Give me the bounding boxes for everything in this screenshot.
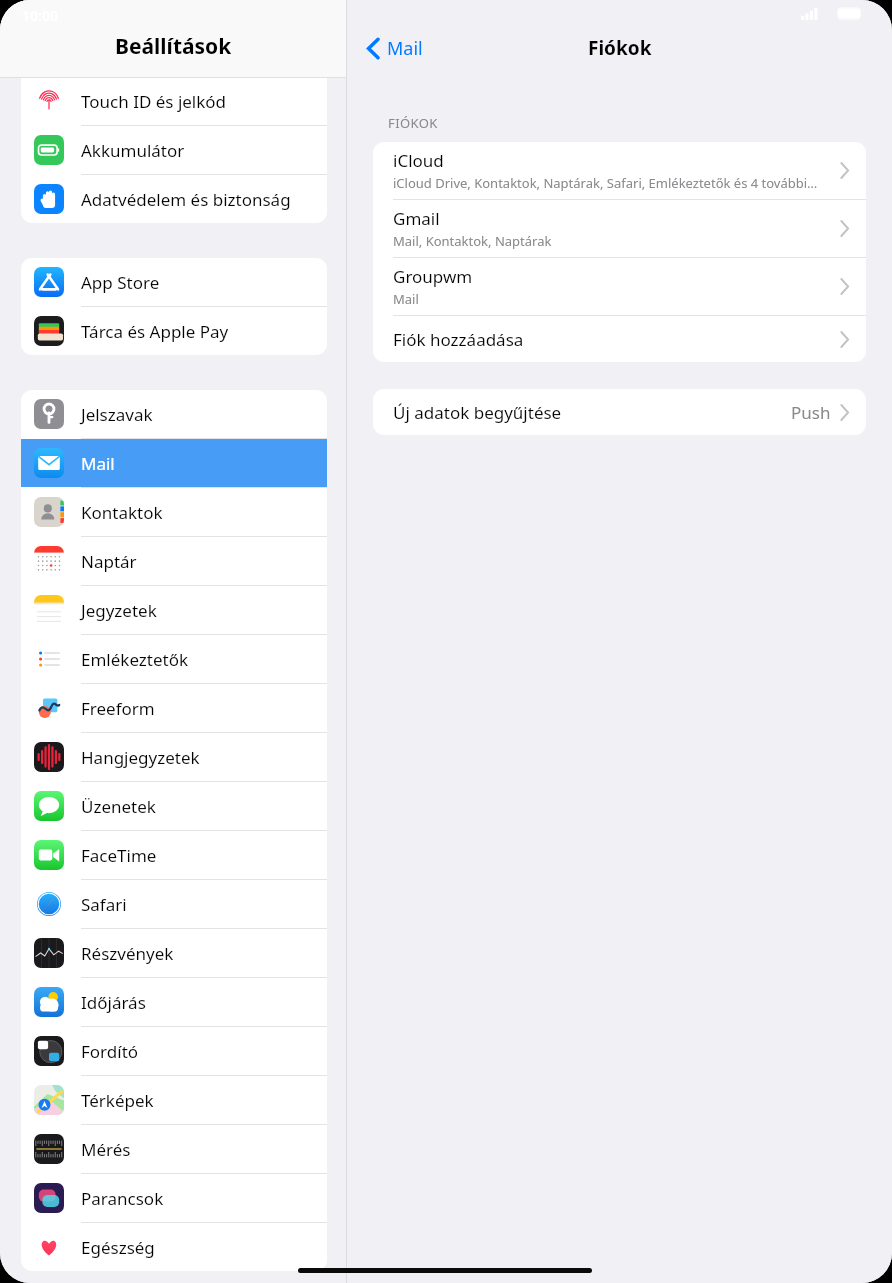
staticText: Mail [81,452,115,475]
button[interactable]: Üzenetek [21,782,327,830]
staticText: Üzenetek [81,795,156,818]
staticText: Parancsok [81,1187,164,1210]
button[interactable]: Freeform [21,684,327,732]
button[interactable]: App Store [21,258,327,306]
button[interactable]: FaceTime [21,831,327,879]
button[interactable]: Jegyzetek [21,586,327,634]
staticText: Naptár [81,550,137,573]
button[interactable]: iCloud [373,142,866,199]
button[interactable]: Tárca és Apple Pay [21,307,327,355]
staticText: Időjárás [81,991,146,1014]
button[interactable]: Jelszavak [21,390,327,438]
button[interactable]: Hangjegyzetek [21,733,327,781]
staticText: Safari [81,893,127,916]
staticText: Touch ID és jelkód [81,90,227,113]
button[interactable]: Részvények [21,929,327,977]
staticText: Térképek [81,1089,154,1112]
button[interactable]: Térképek [21,1076,327,1124]
staticText: Mail [387,36,423,61]
staticText: Mail [393,290,419,308]
staticText: Fiók hozzáadása [393,328,524,351]
staticText: FaceTime [81,844,157,867]
staticText: Mérés [81,1138,131,1161]
staticText: Új adatok begyűjtése [393,401,562,424]
staticText: Emlékeztetők [81,648,189,671]
staticText: Freeform [81,697,155,720]
staticText: iCloud Drive, Kontaktok, Naptárak, Safar… [393,174,818,192]
staticText: Fiókok [588,35,652,61]
staticText: Tárca és Apple Pay [81,320,229,343]
staticText: Groupwm [393,265,473,288]
button[interactable]: Mail [21,439,327,487]
button[interactable]: Mérés [21,1125,327,1173]
staticText: Mail, Kontaktok, Naptárak [393,232,552,250]
button[interactable]: Touch ID és jelkód [21,77,327,125]
staticText: Akkumulátor [81,139,185,162]
button[interactable]: Groupwm [373,258,866,315]
button[interactable]: Akkumulátor [21,126,327,174]
button[interactable]: Kontaktok [21,488,327,536]
staticText: App Store [81,271,160,294]
button[interactable]: Mail [361,32,429,65]
staticText: Beállítások [115,32,232,61]
button[interactable]: Új adatok begyűjtése [373,389,866,435]
staticText: Egészség [81,1236,155,1259]
button[interactable]: Emlékeztetők [21,635,327,683]
staticText: iCloud [393,149,444,172]
button[interactable]: Parancsok [21,1174,327,1222]
button[interactable]: Adatvédelem és biztonság [21,175,327,223]
staticText: FIÓKOK [388,114,438,132]
staticText: Gmail [393,207,440,230]
button[interactable]: Fiók hozzáadása [373,316,866,362]
button[interactable]: Naptár [21,537,327,585]
staticText: Hangjegyzetek [81,746,200,769]
button[interactable]: Gmail [373,200,866,257]
staticText: Push [791,401,831,424]
staticText: Fordító [81,1040,139,1063]
staticText: Kontaktok [81,501,163,524]
button[interactable]: Egészség [21,1223,327,1271]
button[interactable]: Fordító [21,1027,327,1075]
staticText: Jelszavak [81,403,153,426]
button[interactable]: Safari [21,880,327,928]
staticText: Jegyzetek [81,599,157,622]
staticText: Részvények [81,942,174,965]
button[interactable]: Időjárás [21,978,327,1026]
staticText: Adatvédelem és biztonság [81,188,291,211]
